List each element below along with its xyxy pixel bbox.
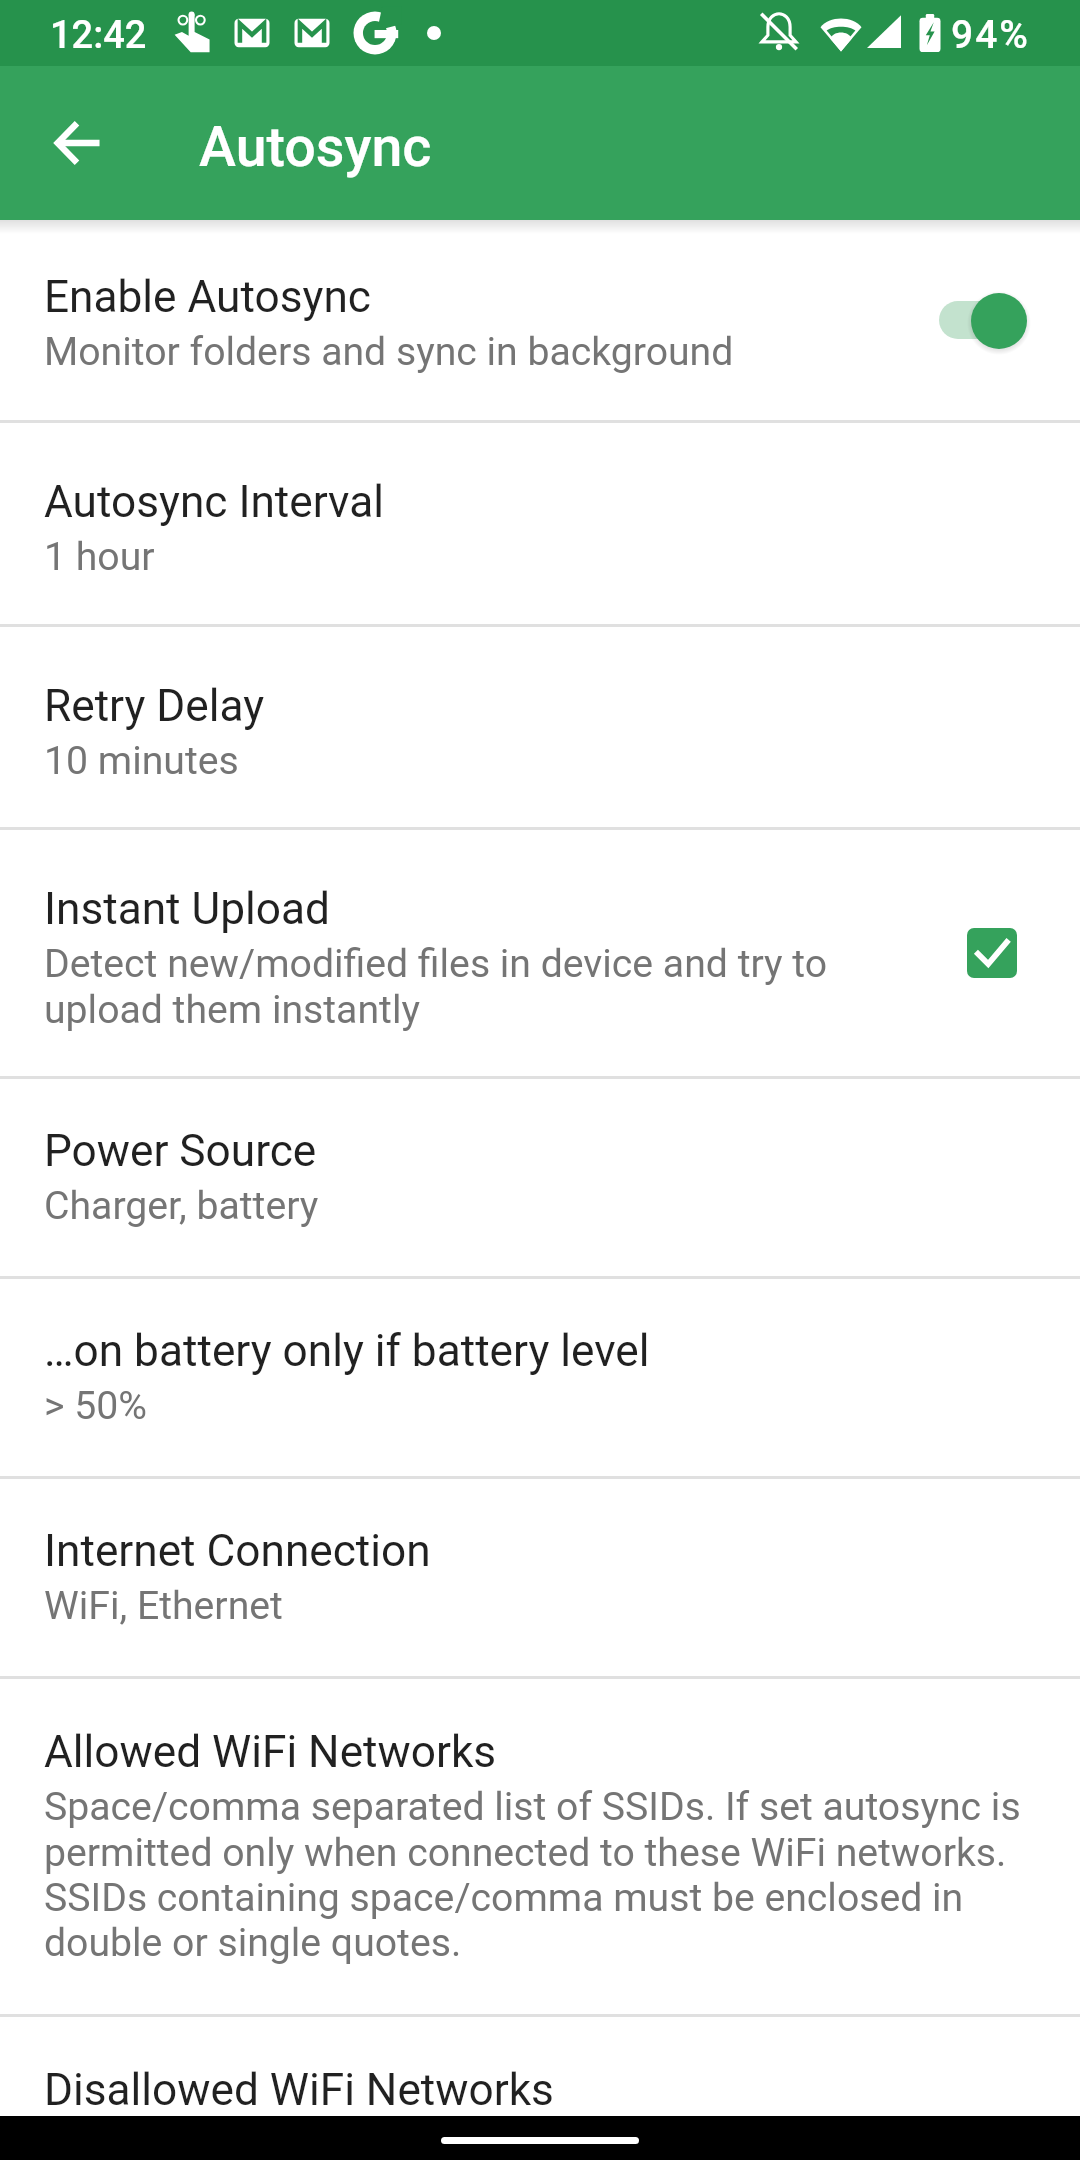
button[interactable]: Enable Autosync toggle — [939, 277, 1055, 363]
staticText: WiFi, Ethernet — [44, 1583, 283, 1629]
button[interactable]: Back — [29, 95, 125, 191]
staticText: Instant Upload — [44, 883, 330, 935]
staticText: Retry Delay — [44, 680, 265, 732]
staticText: Autosync — [199, 115, 432, 180]
staticText: 10 minutes — [44, 738, 239, 784]
staticText: 94% — [951, 12, 1030, 58]
staticText: 12:42 — [50, 13, 147, 58]
staticText: Detect new/modified files in device and … — [44, 941, 932, 1032]
button[interactable]: Internet Connection — [0, 1479, 1080, 1676]
button[interactable]: Allowed WiFi Networks — [0, 1679, 1080, 2014]
staticText: Space/comma separated list of SSIDs. If … — [44, 1784, 1038, 1965]
button[interactable]: Instant Upload — [0, 830, 1080, 1076]
button[interactable]: Retry Delay — [0, 627, 1080, 827]
button[interactable]: Power Source — [0, 1079, 1080, 1276]
staticText: Allowed WiFi Networks — [44, 1726, 497, 1778]
staticText: > 50% — [44, 1383, 147, 1429]
staticText: Disallowed WiFi Networks — [44, 2064, 554, 2116]
staticText: 1 hour — [44, 534, 155, 580]
staticText: …on battery only if battery level — [44, 1325, 650, 1377]
staticText: Monitor folders and sync in background — [44, 329, 734, 375]
button[interactable]: Autosync Interval — [0, 423, 1080, 624]
button[interactable]: Instant Upload checkbox — [952, 913, 1032, 993]
staticText: Charger, battery — [44, 1183, 319, 1229]
button[interactable]: Disallowed WiFi Networks — [0, 2017, 1080, 2116]
staticText: Enable Autosync — [44, 271, 371, 323]
staticText: Internet Connection — [44, 1525, 431, 1577]
button[interactable]: Enable Autosync — [0, 220, 1080, 420]
staticText: Power Source — [44, 1125, 317, 1177]
button[interactable]: …on battery only if battery level — [0, 1279, 1080, 1476]
staticText: Autosync Interval — [44, 476, 384, 528]
button[interactable]: Home — [441, 2137, 639, 2144]
